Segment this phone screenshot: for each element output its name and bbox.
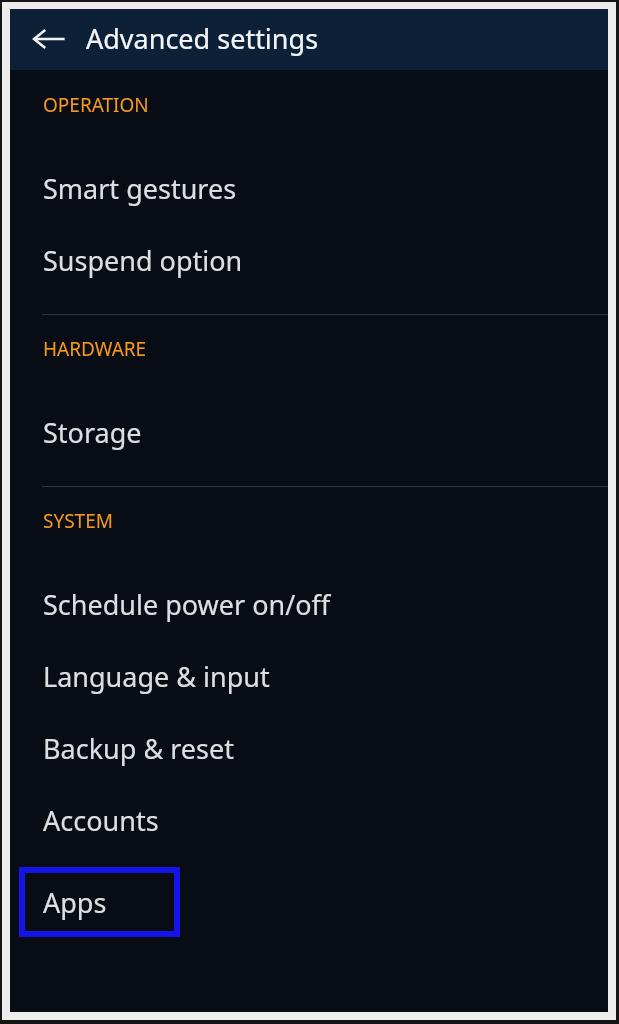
staticText: HARDWARE (43, 336, 147, 362)
button[interactable]: Back (10, 9, 86, 70)
staticText: Language & input (43, 658, 270, 695)
staticText: Backup & reset (43, 730, 234, 767)
staticText: Advanced settings (86, 20, 319, 57)
button[interactable]: Accounts (10, 795, 608, 845)
staticText: Storage (43, 414, 142, 451)
button[interactable]: Storage (10, 407, 608, 457)
button[interactable]: Smart gestures (10, 163, 608, 213)
staticText: Accounts (43, 802, 159, 839)
staticText: Suspend option (43, 242, 243, 279)
button[interactable]: Apps (19, 867, 180, 937)
staticText: OPERATION (43, 92, 149, 118)
button[interactable]: Backup & reset (10, 723, 608, 773)
button[interactable]: Language & input (10, 651, 608, 701)
staticText: Apps (43, 884, 107, 921)
button[interactable]: Suspend option (10, 235, 608, 285)
staticText: Smart gestures (43, 170, 237, 207)
staticText: SYSTEM (43, 508, 113, 534)
staticText: Schedule power on/off (43, 586, 331, 623)
button[interactable]: Schedule power on/off (10, 579, 608, 629)
